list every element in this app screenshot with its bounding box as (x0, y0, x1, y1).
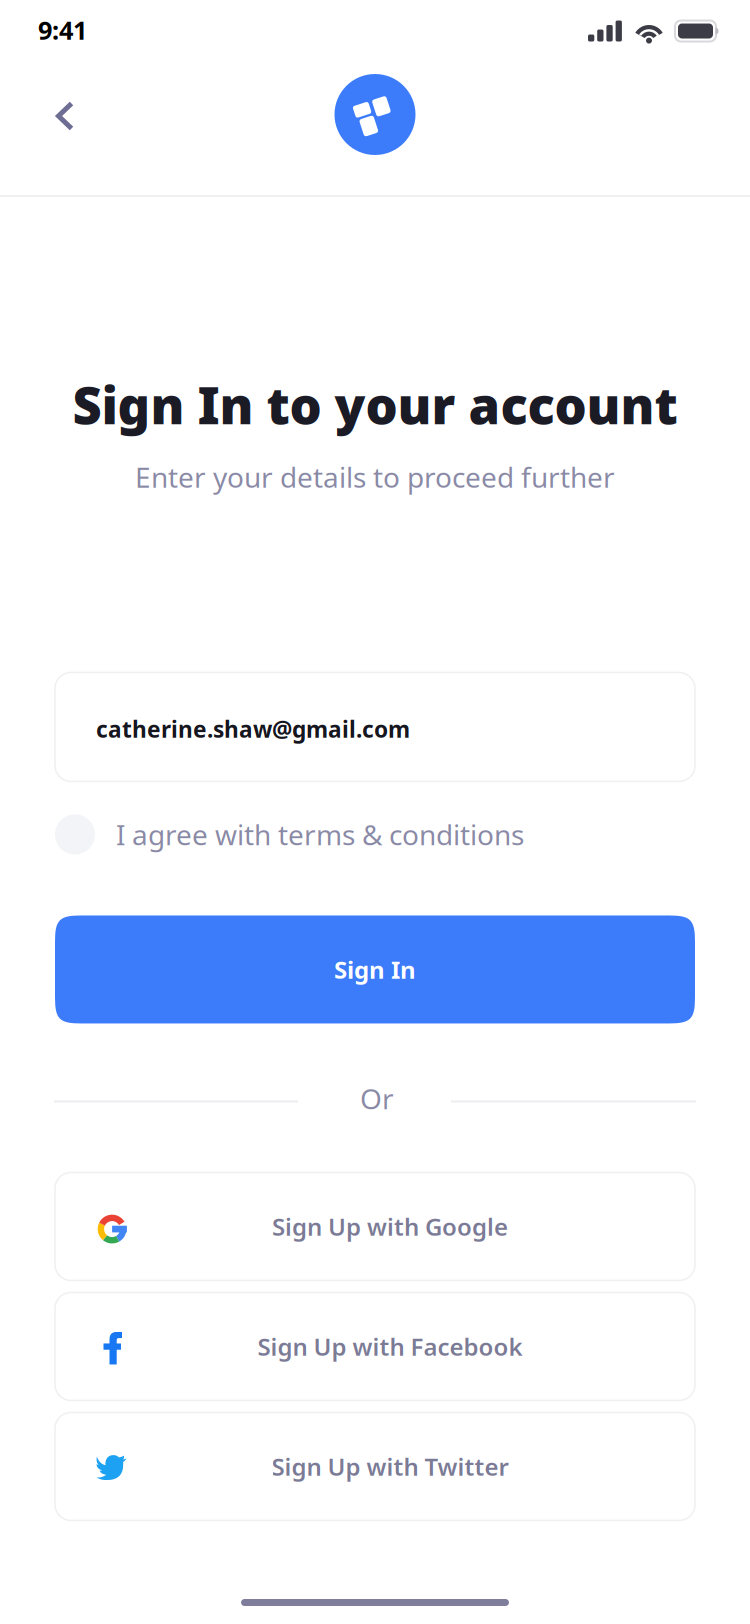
button[interactable]: Sign In (55, 915, 695, 1023)
button[interactable]: I agree with terms & conditions (55, 814, 695, 854)
staticText: Or (360, 1080, 394, 1117)
staticText: Sign Up with Facebook (257, 1330, 522, 1362)
button[interactable]: Back (35, 84, 95, 144)
staticText: Sign In to your account (72, 371, 677, 438)
button[interactable]: Sign Up with Twitter (55, 1412, 695, 1520)
button[interactable]: Sign Up with Facebook (55, 1292, 695, 1400)
staticText: I agree with terms & conditions (116, 816, 524, 853)
staticText: Sign Up with Twitter (271, 1450, 508, 1482)
staticText: Sign Up with Google (272, 1210, 508, 1242)
staticText: Enter your details to proceed further (135, 458, 615, 495)
staticText: Sign In (334, 953, 416, 985)
staticText: 9:41 (38, 13, 87, 47)
staticText: catherine.shaw@gmail.com (96, 714, 410, 744)
button[interactable]: Sign Up with Google (55, 1172, 695, 1280)
